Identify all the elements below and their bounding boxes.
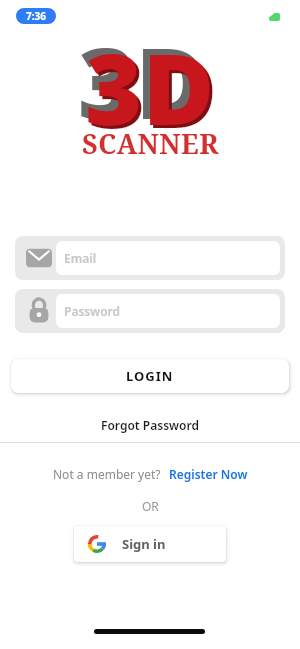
staticText: 3D xyxy=(78,14,208,120)
staticText: Forgot Password xyxy=(101,417,199,433)
button[interactable]: Register Now xyxy=(169,466,248,482)
staticText: Email xyxy=(64,250,97,266)
staticText: LOGIN xyxy=(126,367,174,385)
button[interactable]: LOGIN xyxy=(11,359,289,393)
button[interactable]: Sign in xyxy=(74,526,226,562)
button[interactable]: Email xyxy=(15,236,285,280)
staticText: 3D xyxy=(85,20,215,126)
staticText: Sign in xyxy=(122,535,166,553)
staticText: 3D xyxy=(88,23,218,129)
staticText: Not a member yet? xyxy=(53,466,161,482)
button[interactable]: Forgot Password xyxy=(0,416,300,434)
staticText: OR xyxy=(142,498,159,514)
staticText: Register Now xyxy=(169,466,248,482)
button[interactable]: Password xyxy=(15,289,285,333)
staticText: 7:36 xyxy=(26,9,46,23)
staticText: SCANNER xyxy=(82,125,219,159)
staticText: Password xyxy=(64,303,121,319)
